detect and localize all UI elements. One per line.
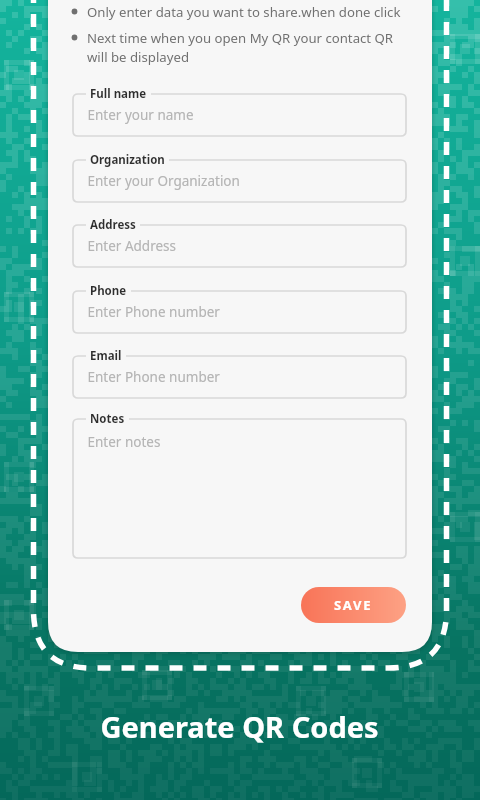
button[interactable]: Phone [73, 291, 406, 333]
button[interactable]: Full name [73, 94, 406, 136]
button[interactable]: Notes [73, 419, 406, 558]
button[interactable]: Save [301, 587, 406, 623]
button[interactable]: Address [73, 225, 406, 267]
button[interactable]: Email [73, 356, 406, 398]
button[interactable]: Organization [73, 160, 406, 202]
